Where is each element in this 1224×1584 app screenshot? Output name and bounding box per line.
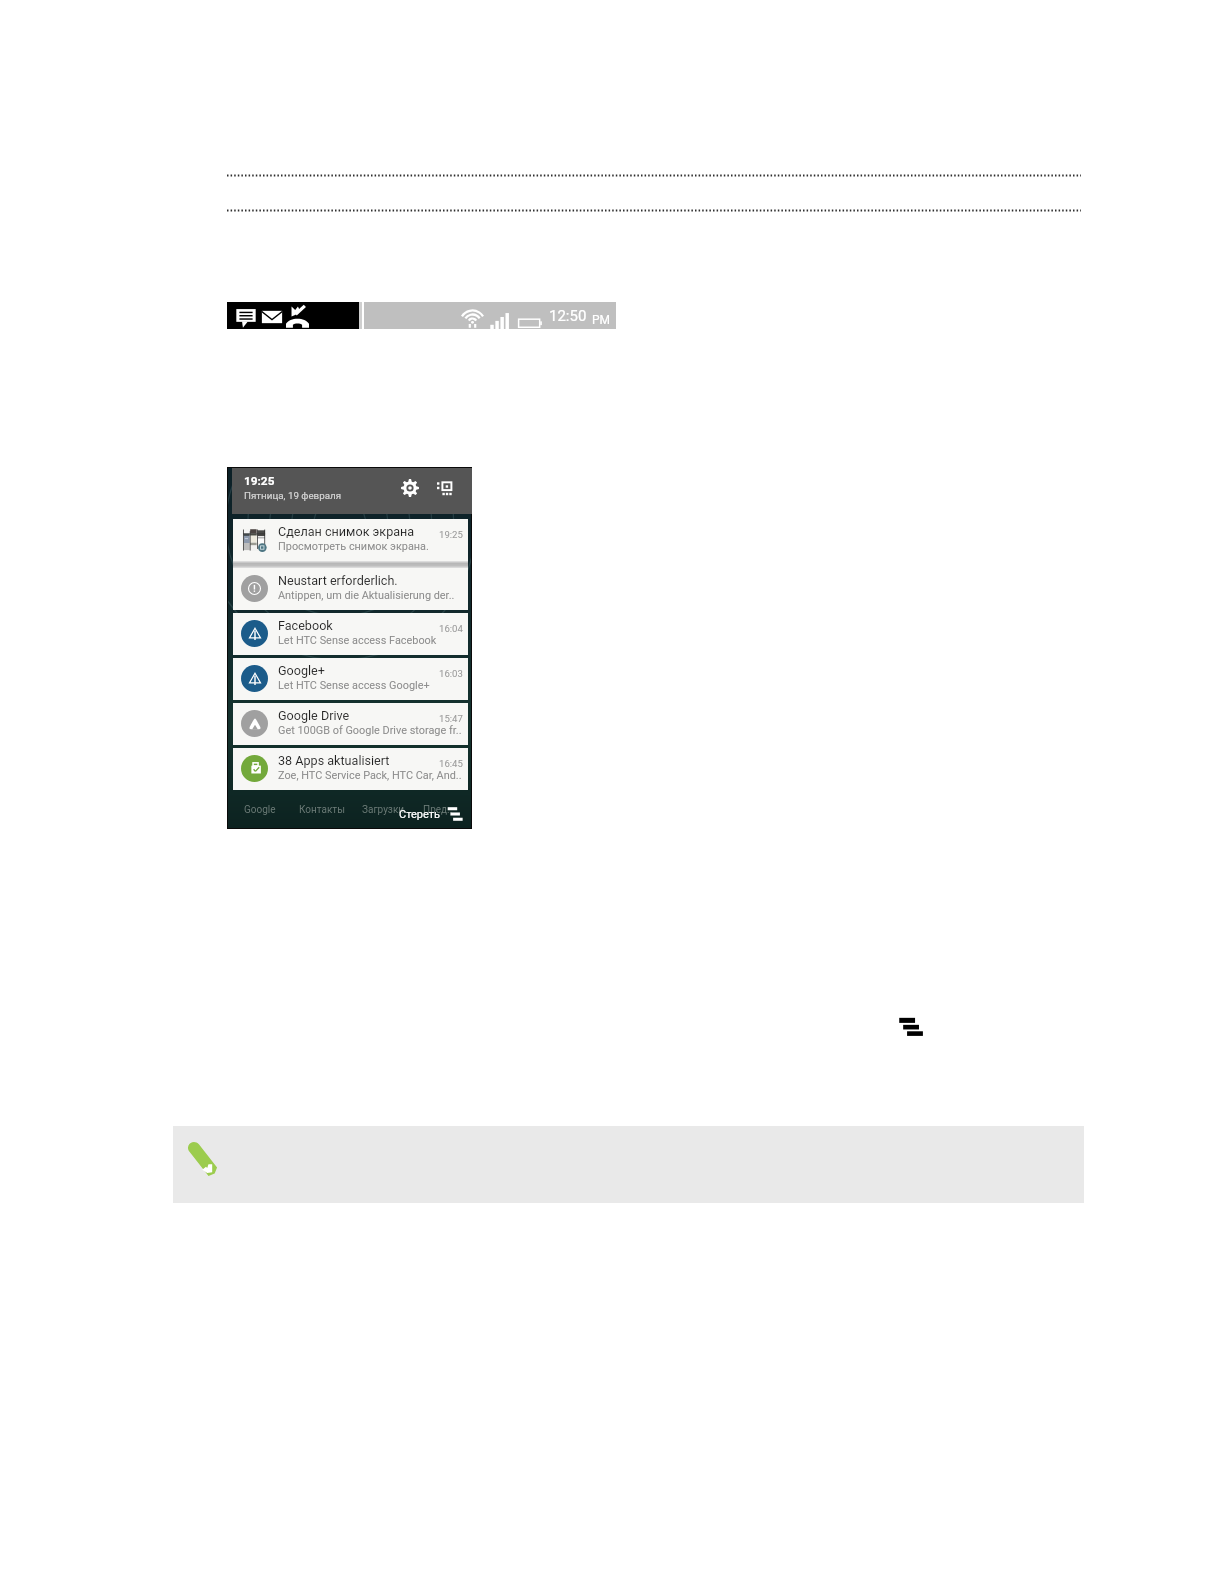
button[interactable]: Facebook xyxy=(233,613,468,655)
staticText: 19:25 xyxy=(244,474,275,488)
staticText: Пред.. xyxy=(423,804,453,816)
staticText: 12:50 xyxy=(549,307,587,325)
button[interactable]: Quick settings xyxy=(434,479,454,499)
staticText: Пятница, 19 февраля xyxy=(244,490,342,501)
button[interactable]: Clear all notifications xyxy=(897,1010,925,1038)
staticText: Google Drive xyxy=(278,708,350,723)
button[interactable]: Neustart erforderlich. xyxy=(233,568,468,610)
staticText: Neustart erforderlich. xyxy=(278,573,398,588)
staticText: Get 100GB of Google Drive storage fr.. xyxy=(278,724,462,737)
staticText: Google xyxy=(244,804,276,816)
button[interactable]: Google Drive xyxy=(233,703,468,745)
button[interactable]: Пред.. xyxy=(423,802,453,818)
staticText: Стереть xyxy=(399,808,441,821)
staticText: Просмотреть снимок экрана. xyxy=(278,540,429,553)
staticText: PM xyxy=(592,313,611,327)
staticText: Загрузки xyxy=(362,804,405,816)
button[interactable]: Google+ xyxy=(233,658,468,700)
staticText: 15:47 xyxy=(439,713,463,724)
staticText: Antippen, um die Aktualisierung der.. xyxy=(278,589,455,602)
staticText: Let HTC Sense access Google+ xyxy=(278,679,430,692)
button[interactable]: Settings xyxy=(399,477,421,499)
staticText: 16:04 xyxy=(439,623,463,634)
staticText: Сделан снимок экрана xyxy=(278,524,415,539)
staticText: 19:25 xyxy=(439,529,463,540)
staticText: 38 Apps aktualisiert xyxy=(278,753,390,768)
button[interactable]: Контакты xyxy=(299,802,345,818)
staticText: 16:45 xyxy=(439,758,463,769)
button[interactable]: Загрузки xyxy=(362,802,405,818)
staticText: Google+ xyxy=(278,663,325,678)
button[interactable]: 38 Apps aktualisiert xyxy=(233,748,468,790)
staticText: Контакты xyxy=(299,804,345,816)
button[interactable]: Google xyxy=(244,802,276,818)
staticText: Zoe, HTC Service Pack, HTC Car, And.. xyxy=(278,769,462,782)
staticText: Facebook xyxy=(278,618,333,633)
staticText: 16:03 xyxy=(439,668,463,679)
button[interactable]: Сделан снимок экрана xyxy=(233,519,468,561)
button[interactable]: Стереть xyxy=(399,806,464,823)
staticText: Let HTC Sense access Facebook xyxy=(278,634,437,647)
